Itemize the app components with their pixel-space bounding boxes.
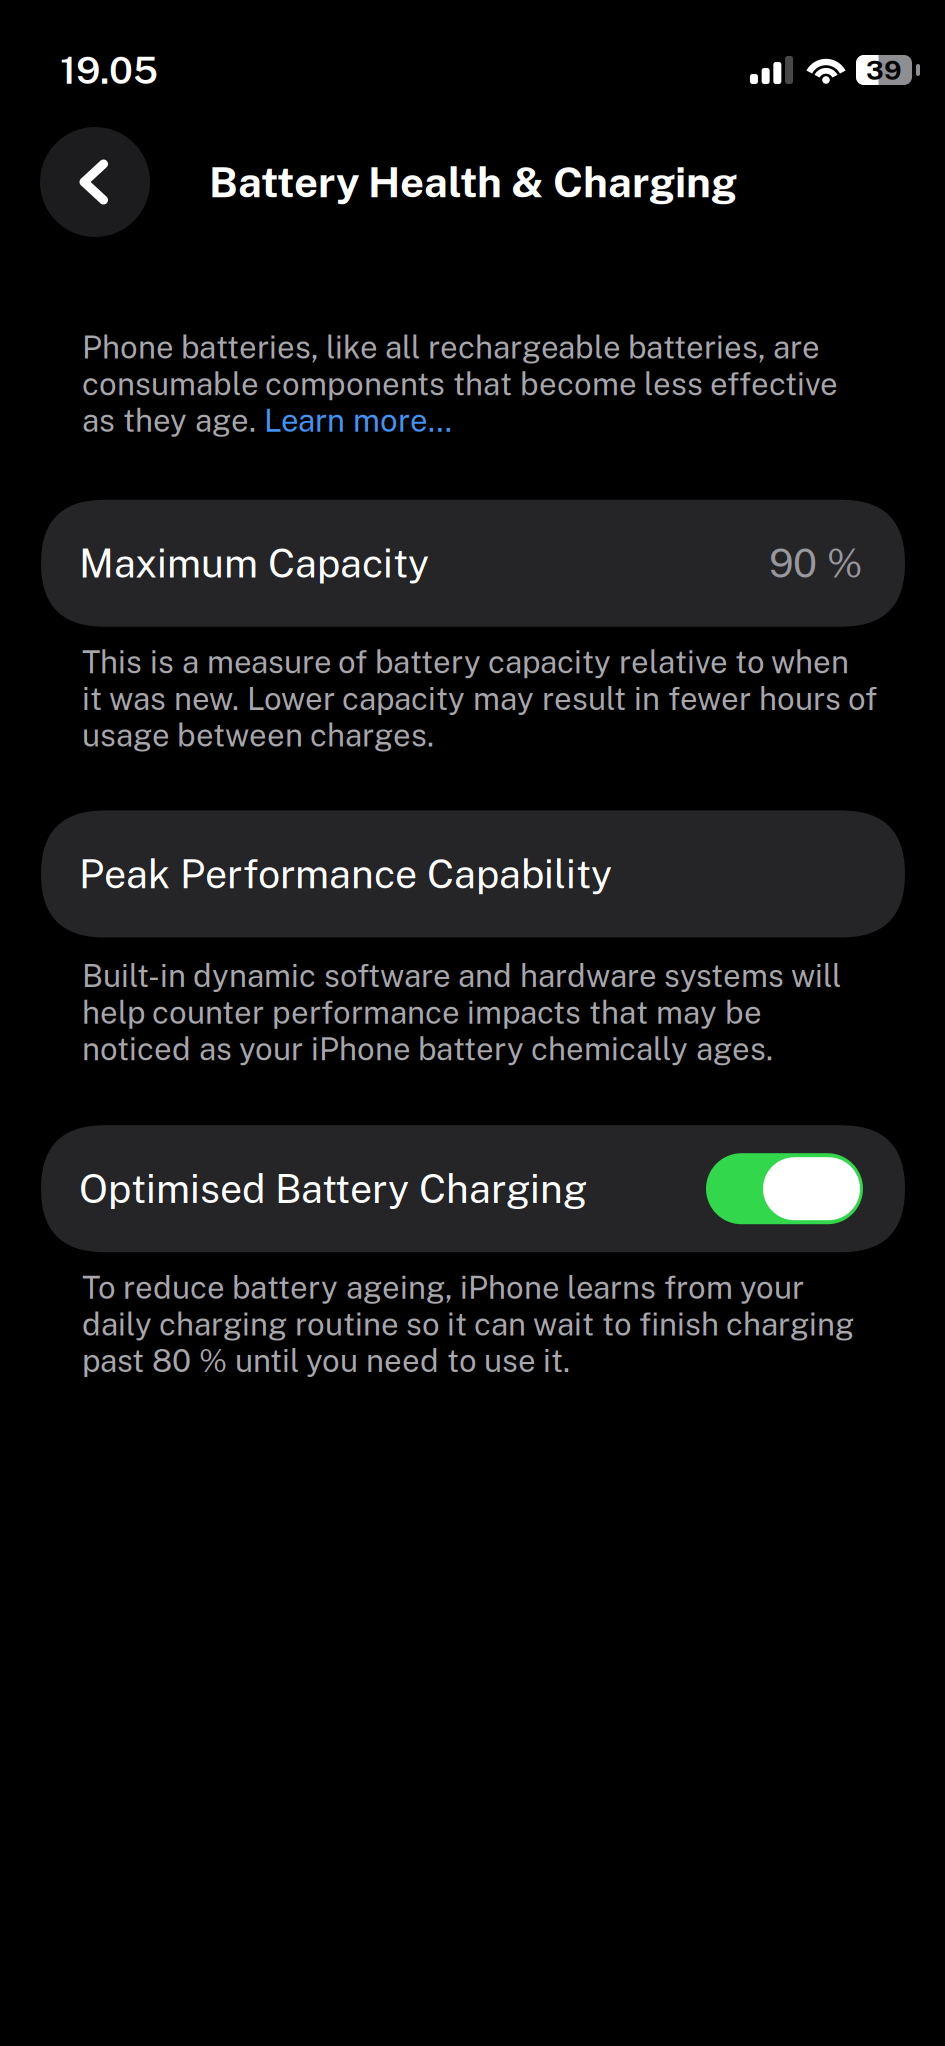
button[interactable]: Peak Performance Capability (41, 810, 905, 937)
button[interactable]: Back (40, 127, 150, 237)
staticText: 90 % (769, 540, 863, 586)
button[interactable]: Maximum Capacity (41, 500, 905, 627)
staticText: This is a measure of battery capacity re… (82, 644, 877, 753)
staticText: To reduce battery ageing, iPhone learns … (82, 1269, 854, 1379)
staticText: as they age. (82, 402, 264, 439)
staticText: Peak Performance Capability (79, 851, 612, 897)
staticText: 19.05 (60, 48, 158, 92)
button[interactable]: Learn more… (264, 402, 452, 439)
staticText: Learn more… (264, 402, 452, 439)
staticText: 39 (866, 54, 902, 86)
button[interactable]: Optimised Battery Charging (41, 1125, 905, 1252)
staticText: Battery Health & Charging (209, 157, 737, 207)
staticText: Built-in dynamic software and hardware s… (82, 957, 841, 1067)
staticText: Phone batteries, like all rechargeable b… (82, 329, 838, 402)
staticText: Maximum Capacity (79, 540, 429, 586)
staticText: Optimised Battery Charging (79, 1166, 587, 1212)
